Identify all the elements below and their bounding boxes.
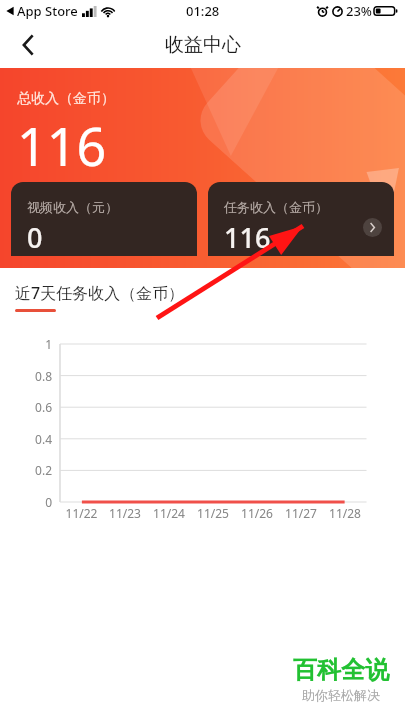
button[interactable]: 视频收入（元） xyxy=(11,182,197,256)
staticText: 百科全说 xyxy=(293,655,389,685)
staticText: 11/28 xyxy=(323,505,367,521)
staticText: 0.8 xyxy=(0,368,52,384)
staticText: 1 xyxy=(0,336,52,352)
button[interactable]: 任务收入（金币） xyxy=(208,182,394,256)
staticText: App Store xyxy=(17,2,78,20)
staticText: 116 xyxy=(224,219,271,256)
staticText: 收益中心 xyxy=(165,33,241,57)
staticText: 0 xyxy=(27,219,43,256)
staticText: 0.6 xyxy=(0,399,52,415)
staticText: 11/22 xyxy=(60,505,103,521)
button[interactable]: Back xyxy=(8,25,48,65)
staticText: 视频收入（元） xyxy=(27,199,118,215)
staticText: 近7天任务收入（金币） xyxy=(15,282,185,304)
staticText: 任务收入（金币） xyxy=(224,199,328,215)
staticText: 23% xyxy=(346,2,372,20)
staticText: 01:28 xyxy=(186,2,220,20)
staticText: 11/27 xyxy=(279,505,323,521)
staticText: 助你轻松解决 xyxy=(302,687,380,703)
staticText: 11/26 xyxy=(235,505,279,521)
staticText: 11/23 xyxy=(103,505,147,521)
staticText: 11/24 xyxy=(147,505,191,521)
staticText: 11/25 xyxy=(191,505,235,521)
staticText: 总收入（金币） xyxy=(17,90,115,108)
button[interactable]: More xyxy=(363,218,382,237)
staticText: 0.4 xyxy=(0,431,52,447)
staticText: 0.2 xyxy=(0,462,52,478)
staticText: 116 xyxy=(17,110,107,181)
staticText: 0 xyxy=(0,494,52,510)
